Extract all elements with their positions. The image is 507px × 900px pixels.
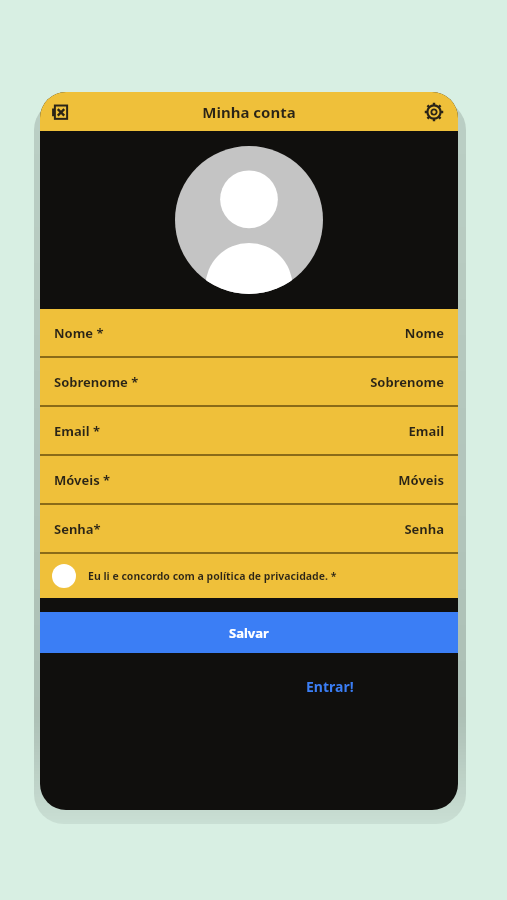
button[interactable]: Senha* (40, 505, 458, 552)
button[interactable]: Sobrenome * (40, 358, 458, 405)
button[interactable]: Delete account (46, 97, 76, 127)
staticText: Senha (404, 520, 444, 538)
staticText: Email * (54, 422, 100, 440)
staticText: Nome (404, 324, 444, 342)
staticText: Minha conta (202, 102, 296, 122)
button[interactable]: Profile photo (175, 146, 323, 294)
button[interactable]: Eu li e concordo com a política de priva… (40, 554, 458, 598)
staticText: Senha* (54, 520, 101, 538)
staticText: Sobrenome (370, 373, 444, 391)
button[interactable]: Salvar (40, 612, 458, 653)
button[interactable]: Email * (40, 407, 458, 454)
staticText: Móveis * (54, 471, 111, 489)
staticText: Sobrenome * (54, 373, 139, 391)
button[interactable]: Entrar! (298, 671, 362, 702)
staticText: Eu li e concordo com a política de priva… (88, 569, 337, 583)
staticText: Entrar! (306, 677, 354, 696)
button[interactable]: Settings (418, 96, 450, 128)
staticText: Móveis (398, 471, 444, 489)
staticText: Nome * (54, 324, 104, 342)
button[interactable]: Móveis * (40, 456, 458, 503)
button[interactable]: Nome * (40, 309, 458, 356)
staticText: Salvar (229, 624, 269, 642)
staticText: Email (408, 422, 444, 440)
